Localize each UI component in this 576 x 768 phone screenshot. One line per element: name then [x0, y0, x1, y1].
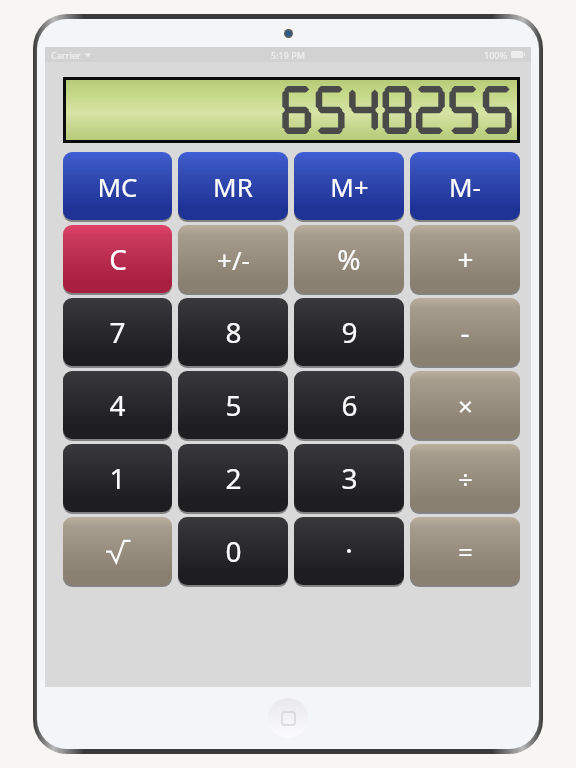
staticText: 2: [225, 459, 242, 497]
button[interactable]: Home: [268, 698, 308, 738]
button[interactable]: [294, 517, 404, 585]
staticText: =: [458, 534, 473, 569]
button[interactable]: 3: [294, 444, 404, 512]
staticText: 0: [225, 532, 242, 570]
staticText: 5: [225, 386, 242, 424]
button[interactable]: 2: [178, 444, 288, 512]
staticText: MR: [213, 169, 253, 204]
staticText: 4: [109, 386, 126, 424]
staticText: 8: [225, 313, 242, 351]
button[interactable]: =: [410, 517, 520, 585]
staticText: Carrier: [51, 49, 81, 61]
button[interactable]: 5: [178, 371, 288, 439]
button[interactable]: M-: [410, 152, 520, 220]
staticText: ×: [458, 388, 473, 423]
staticText: %: [337, 240, 361, 278]
button[interactable]: +/-: [178, 225, 288, 293]
staticText: C: [109, 240, 127, 278]
button[interactable]: 6: [294, 371, 404, 439]
staticText: M-: [449, 169, 481, 204]
staticText: +/-: [217, 242, 250, 277]
button[interactable]: MC: [63, 152, 172, 220]
button[interactable]: 1: [63, 444, 172, 512]
button[interactable]: MR: [178, 152, 288, 220]
button[interactable]: ×: [410, 371, 520, 439]
staticText: -: [460, 313, 470, 351]
staticText: 7: [109, 313, 126, 351]
staticText: +: [457, 240, 474, 278]
button[interactable]: -: [410, 298, 520, 366]
button[interactable]: 4: [63, 371, 172, 439]
staticText: 9: [341, 313, 358, 351]
button[interactable]: 8: [178, 298, 288, 366]
staticText: 6: [341, 386, 358, 424]
button[interactable]: %: [294, 225, 404, 293]
button[interactable]: 9: [294, 298, 404, 366]
button[interactable]: C: [63, 225, 172, 293]
staticText: 1: [109, 459, 126, 497]
staticText: M+: [330, 169, 369, 204]
staticText: 5:19 PM: [271, 49, 305, 61]
button[interactable]: +: [410, 225, 520, 293]
staticText: 3: [341, 459, 358, 497]
button[interactable]: M+: [294, 152, 404, 220]
button[interactable]: 0: [178, 517, 288, 585]
staticText: ÷: [458, 461, 473, 496]
staticText: 100%: [484, 49, 508, 61]
staticText: MC: [97, 169, 138, 204]
button[interactable]: [63, 517, 172, 585]
button[interactable]: ÷: [410, 444, 520, 512]
button[interactable]: 7: [63, 298, 172, 366]
